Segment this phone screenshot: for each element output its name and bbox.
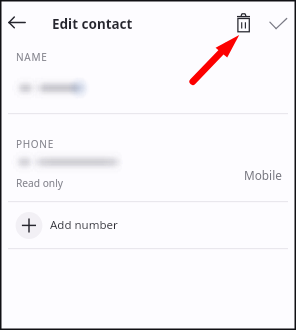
button[interactable]: Back bbox=[4, 10, 30, 36]
button[interactable]: Save bbox=[264, 9, 291, 36]
button[interactable] bbox=[0, 202, 296, 248]
staticText: PHONE bbox=[16, 137, 54, 151]
button[interactable]: Delete bbox=[230, 9, 257, 36]
staticText: Edit contact bbox=[52, 15, 133, 33]
staticText: Add number bbox=[50, 217, 118, 233]
staticText: Mobile bbox=[244, 167, 282, 183]
staticText: NAME bbox=[16, 50, 48, 64]
staticText: Read only bbox=[16, 176, 63, 190]
